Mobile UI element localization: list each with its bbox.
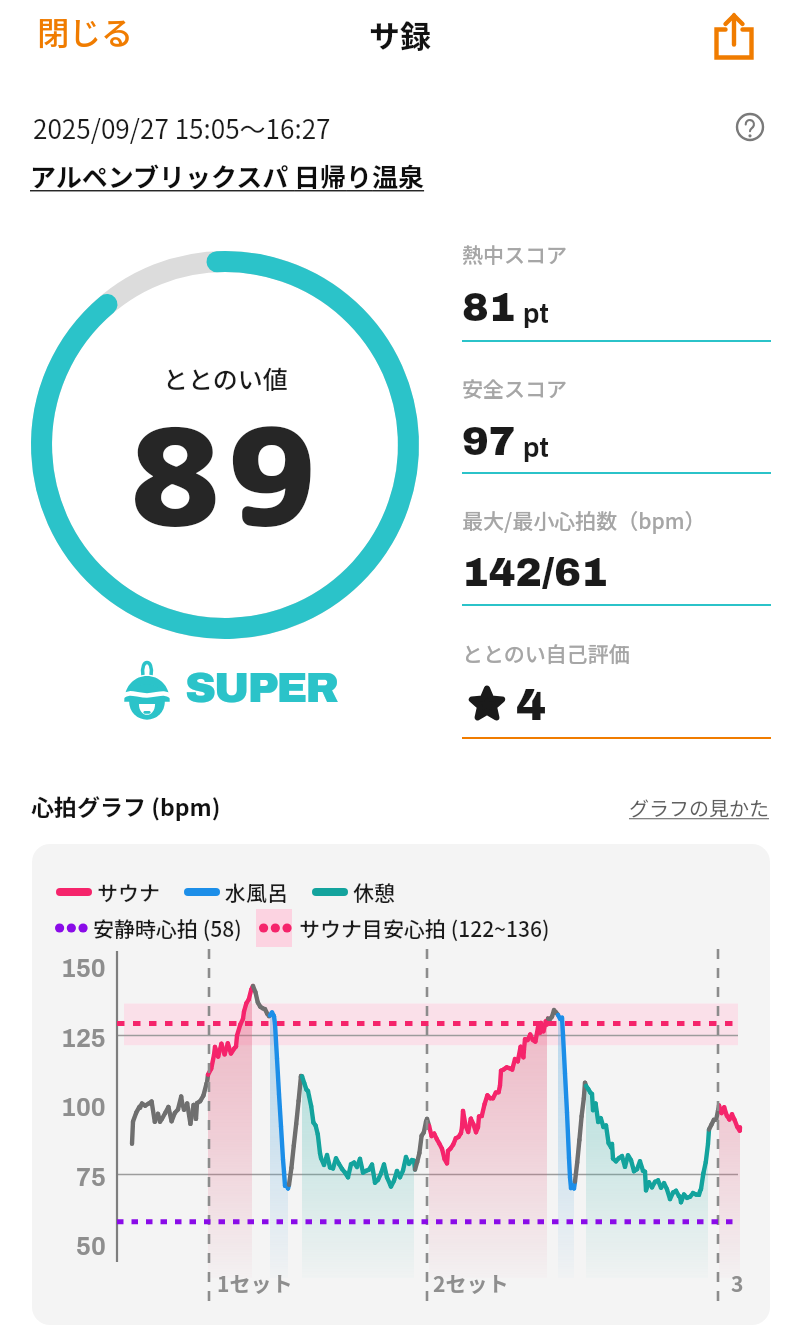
button[interactable]: Help [734, 111, 766, 143]
staticText: ととのい値 [163, 360, 288, 396]
staticText: サウナ目安心拍 (122~136) [299, 913, 550, 943]
staticText: 1セット [217, 1268, 293, 1298]
staticText: 最大/最小心拍数（bpm） [462, 505, 706, 535]
staticText: 125 [61, 1025, 106, 1052]
button[interactable]: アルペンブリックスパ 日帰り温泉 [30, 157, 425, 195]
staticText: アルペンブリックスパ 日帰り温泉 [30, 157, 425, 195]
staticText: pt [523, 433, 549, 462]
staticText: 142/61 [462, 551, 608, 595]
staticText: 熱中スコア [462, 239, 567, 269]
button[interactable]: SUPER rank [112, 657, 182, 721]
staticText: 81 [462, 286, 516, 330]
staticText: サ録 [369, 12, 431, 57]
staticText: SUPER [185, 664, 337, 711]
staticText: 心拍グラフ (bpm) [31, 789, 221, 822]
staticText: 閉じる [37, 8, 134, 54]
staticText: グラフの見かた [629, 793, 769, 822]
staticText: 89 [131, 382, 324, 569]
staticText: サウナ [97, 877, 160, 907]
staticText: 3 [731, 1268, 744, 1298]
staticText: 2025/09/27 15:05〜16:27 [33, 109, 331, 147]
staticText: 安静時心拍 (58) [93, 913, 242, 943]
staticText: 休憩 [353, 877, 395, 907]
staticText: 150 [61, 955, 106, 982]
staticText: 4 [516, 680, 547, 729]
staticText: 水風呂 [225, 877, 288, 907]
staticText: 2セット [433, 1268, 509, 1298]
button[interactable]: Share [698, 0, 770, 72]
button[interactable]: グラフの見かた [629, 793, 769, 822]
staticText: 100 [61, 1094, 106, 1121]
staticText: pt [523, 299, 549, 328]
staticText: 97 [462, 420, 516, 464]
staticText: ととのい自己評価 [462, 638, 630, 668]
staticText: 50 [76, 1233, 106, 1260]
staticText: 安全スコア [462, 373, 567, 403]
staticText: 75 [76, 1164, 106, 1191]
button[interactable]: 閉じる [29, 2, 142, 60]
